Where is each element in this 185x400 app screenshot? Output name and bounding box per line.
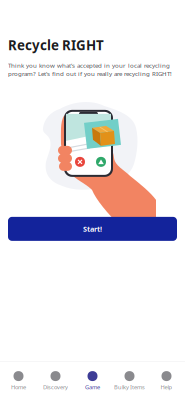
- staticText: Start!: [83, 224, 102, 234]
- button[interactable]: Start!: [8, 217, 177, 241]
- staticText: Help: [160, 383, 172, 391]
- button[interactable]: Discovery: [37, 362, 74, 400]
- staticText: Home: [11, 383, 26, 391]
- button[interactable]: Bulky Items: [111, 362, 148, 400]
- staticText: Discovery: [43, 383, 68, 391]
- button[interactable]: Home: [0, 362, 37, 400]
- staticText: Game: [85, 383, 100, 391]
- staticText: Recycle RIGHT: [8, 36, 104, 54]
- button[interactable]: Help: [148, 362, 185, 400]
- button[interactable]: Game: [74, 362, 111, 400]
- staticText: Bulky Items: [114, 383, 145, 391]
- staticText: Think you know what's accepted in your l…: [8, 61, 172, 78]
